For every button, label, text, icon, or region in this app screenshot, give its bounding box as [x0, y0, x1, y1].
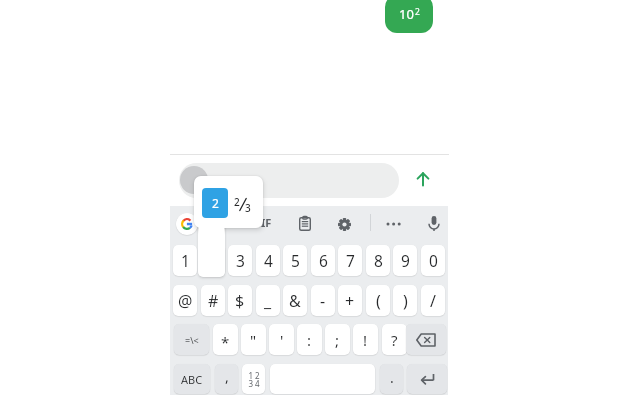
button[interactable]: !	[353, 324, 378, 355]
staticText: 6	[319, 250, 328, 271]
button[interactable]: =\<	[174, 324, 209, 355]
button[interactable]: 7	[338, 245, 362, 276]
button[interactable]: :	[297, 324, 322, 355]
button[interactable]	[385, 220, 402, 228]
staticText: 10	[399, 5, 414, 23]
staticText: ;	[335, 330, 340, 350]
button[interactable]	[415, 170, 431, 188]
button[interactable]: 2	[202, 188, 228, 218]
staticText: ?	[391, 330, 398, 350]
staticText: 8	[374, 250, 383, 271]
button[interactable]: /	[421, 285, 445, 316]
button[interactable]: ?	[382, 324, 407, 355]
staticText: 7	[346, 250, 355, 271]
staticText: ,	[225, 367, 229, 386]
staticText: +	[345, 290, 355, 312]
staticText: :	[307, 330, 312, 350]
staticText: _	[264, 290, 272, 312]
button[interactable]	[427, 215, 441, 232]
button[interactable]: 3	[228, 245, 252, 276]
staticText: 9	[401, 250, 410, 271]
button[interactable]	[179, 163, 399, 198]
staticText: 1 2 3 4	[248, 370, 260, 389]
button[interactable]: ;	[325, 324, 350, 355]
staticText: -	[320, 290, 326, 312]
button[interactable]: &	[283, 285, 307, 316]
button[interactable]: '	[269, 324, 294, 355]
staticText: !	[363, 330, 368, 350]
button[interactable]: 6	[311, 245, 335, 276]
button[interactable]: .	[380, 364, 403, 394]
button[interactable]: 1 2 3 4	[242, 364, 265, 394]
staticText: *	[221, 332, 230, 352]
staticText: @	[178, 290, 193, 312]
button[interactable]: *	[213, 324, 238, 355]
staticText: #	[208, 290, 219, 312]
staticText: 3	[236, 250, 245, 271]
staticText: 1	[181, 250, 190, 271]
staticText: (	[376, 290, 381, 312]
button[interactable]	[406, 324, 446, 355]
staticText: 5	[291, 250, 300, 271]
staticText: &	[289, 290, 301, 312]
staticText: "	[250, 330, 257, 350]
button[interactable]	[338, 218, 351, 231]
staticText: )	[403, 290, 408, 312]
button[interactable]: 10	[385, 0, 433, 33]
button[interactable]: 9	[393, 245, 417, 276]
button[interactable]: 4	[256, 245, 280, 276]
staticText: 4	[264, 250, 273, 271]
button[interactable]	[299, 216, 311, 231]
staticText: '	[280, 330, 284, 350]
staticText: 2	[212, 195, 219, 211]
button[interactable]: 1	[173, 245, 197, 276]
staticText: .	[390, 368, 394, 387]
button[interactable]: 0	[421, 245, 445, 276]
staticText: 2	[415, 6, 420, 18]
staticText: ABC	[181, 372, 203, 387]
button[interactable]	[176, 213, 198, 235]
staticText: $	[235, 290, 245, 312]
button[interactable]: GIF	[253, 215, 272, 230]
button[interactable]: 5	[283, 245, 307, 276]
button[interactable]: @	[173, 285, 197, 316]
button[interactable]: $	[228, 285, 252, 316]
button[interactable]: )	[393, 285, 417, 316]
button[interactable]: (	[366, 285, 390, 316]
button[interactable]: ,	[215, 364, 238, 394]
button[interactable]: #	[201, 285, 225, 316]
button[interactable]: 3	[245, 201, 251, 215]
button[interactable]: -	[311, 285, 335, 316]
button[interactable]: +	[338, 285, 362, 316]
button[interactable]: "	[241, 324, 266, 355]
button[interactable]: _	[256, 285, 280, 316]
button[interactable]: 8	[366, 245, 390, 276]
staticText: /	[430, 290, 436, 312]
button[interactable]: ABC	[174, 364, 210, 394]
staticText: 0	[429, 250, 438, 271]
button[interactable]: 2	[234, 195, 240, 209]
staticText: =\<	[185, 334, 199, 346]
button[interactable]	[407, 364, 447, 394]
